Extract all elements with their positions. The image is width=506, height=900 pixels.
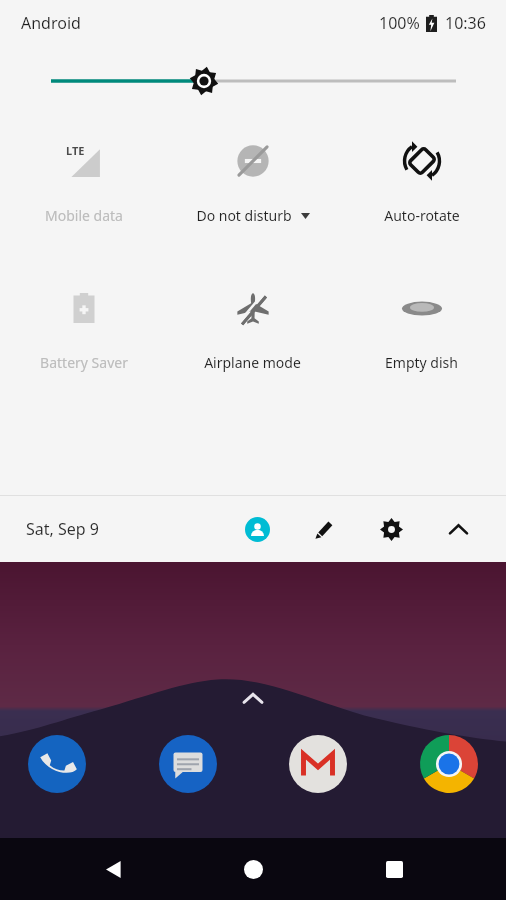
button[interactable]: LTE	[0, 134, 168, 229]
button[interactable]: Settings	[369, 507, 413, 551]
button[interactable]: Phone	[26, 733, 88, 795]
button[interactable]: Battery Saver	[0, 281, 168, 376]
button[interactable]: User	[234, 506, 280, 552]
staticText: Airplane mode	[204, 353, 301, 372]
button[interactable]: Do not disturb	[168, 134, 337, 229]
staticText: Mobile data	[45, 206, 123, 225]
button[interactable]: Chrome	[418, 733, 480, 795]
staticText: LTE	[66, 143, 85, 158]
staticText: Auto-rotate	[384, 206, 460, 225]
staticText: Empty dish	[385, 353, 458, 372]
button[interactable]: Edit	[302, 507, 346, 551]
button[interactable]: Airplane mode	[168, 281, 337, 376]
button[interactable]: Auto-rotate	[337, 134, 506, 229]
staticText: Do not disturb	[196, 206, 292, 225]
button[interactable]: Back	[85, 841, 141, 897]
staticText: 10:36	[445, 12, 486, 34]
button[interactable]: Collapse	[436, 507, 480, 551]
button[interactable]: Brightness	[0, 64, 506, 98]
staticText: Sat, Sep 9	[26, 518, 99, 540]
button[interactable]: Messages	[157, 733, 219, 795]
staticText: 100%	[379, 12, 420, 34]
button[interactable]: Empty dish	[337, 281, 506, 376]
staticText: Battery Saver	[40, 353, 128, 372]
button[interactable]: Recent apps	[366, 841, 422, 897]
button[interactable]: Gmail	[287, 733, 349, 795]
button[interactable]: Home	[225, 841, 281, 897]
staticText: Android	[21, 12, 81, 34]
button[interactable]: All apps	[233, 678, 273, 718]
